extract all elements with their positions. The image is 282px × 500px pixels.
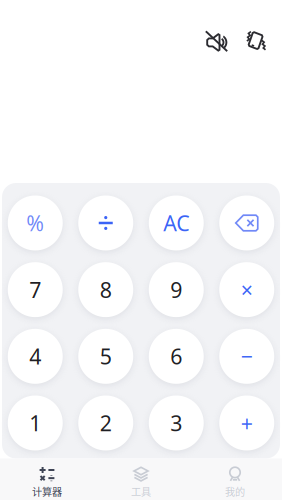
staticText: 1: [29, 409, 41, 437]
button[interactable]: +: [219, 395, 274, 450]
button[interactable]: 8: [78, 262, 133, 317]
button[interactable]: Sound off: [195, 25, 238, 57]
button[interactable]: 我的: [188, 458, 282, 500]
button[interactable]: %: [8, 195, 63, 250]
button[interactable]: 9: [149, 262, 204, 317]
staticText: %: [26, 209, 44, 237]
staticText: 7: [29, 275, 41, 304]
button[interactable]: 3: [149, 395, 204, 450]
button[interactable]: 工具: [94, 458, 188, 500]
button[interactable]: ×: [219, 262, 274, 317]
button[interactable]: AC: [149, 195, 204, 250]
staticText: 工具: [131, 484, 151, 499]
button[interactable]: −: [219, 329, 274, 384]
button[interactable]: 1: [8, 395, 63, 450]
button[interactable]: Delete: [219, 195, 274, 250]
staticText: 我的: [225, 484, 245, 499]
button[interactable]: 5: [78, 329, 133, 384]
staticText: −: [241, 342, 253, 370]
button[interactable]: Divide: [78, 195, 133, 250]
staticText: 3: [170, 409, 182, 437]
staticText: 计算器: [32, 484, 62, 499]
staticText: 9: [170, 275, 182, 304]
staticText: 2: [100, 409, 112, 437]
staticText: AC: [163, 209, 189, 237]
button[interactable]: 6: [149, 329, 204, 384]
staticText: 5: [100, 342, 112, 370]
staticText: ×: [241, 275, 253, 304]
button[interactable]: 2: [78, 395, 133, 450]
staticText: 8: [100, 275, 112, 304]
button[interactable]: Vibration: [238, 25, 273, 57]
staticText: 4: [29, 342, 41, 370]
button[interactable]: 4: [8, 329, 63, 384]
button[interactable]: 计算器: [0, 458, 94, 500]
staticText: +: [241, 409, 253, 437]
button[interactable]: 7: [8, 262, 63, 317]
staticText: 6: [170, 342, 182, 370]
